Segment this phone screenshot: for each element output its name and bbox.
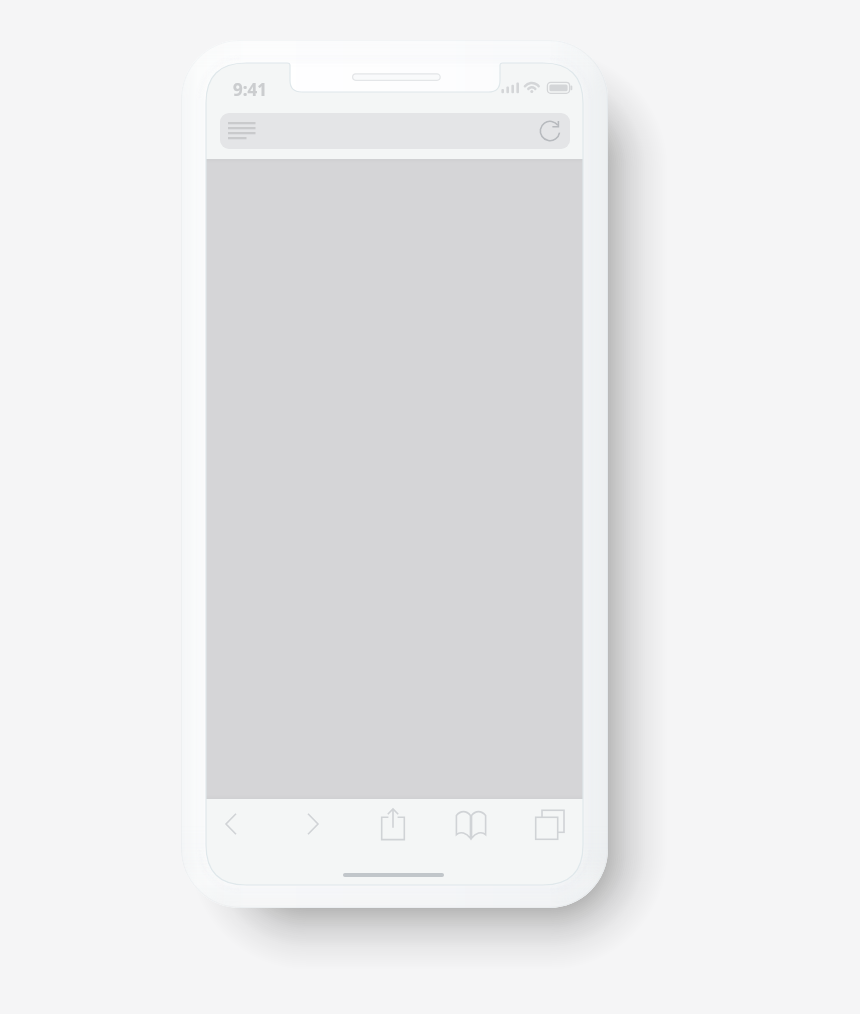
button[interactable]: Back bbox=[207, 800, 255, 848]
button[interactable]: Bookmarks bbox=[447, 800, 495, 848]
button[interactable]: Share bbox=[369, 800, 417, 848]
button[interactable]: Tabs bbox=[526, 800, 574, 848]
button[interactable]: Address and search bbox=[220, 113, 570, 149]
button[interactable]: Forward bbox=[289, 800, 337, 848]
staticText: 9:41 bbox=[233, 78, 267, 101]
button[interactable]: Reload page bbox=[533, 114, 567, 148]
